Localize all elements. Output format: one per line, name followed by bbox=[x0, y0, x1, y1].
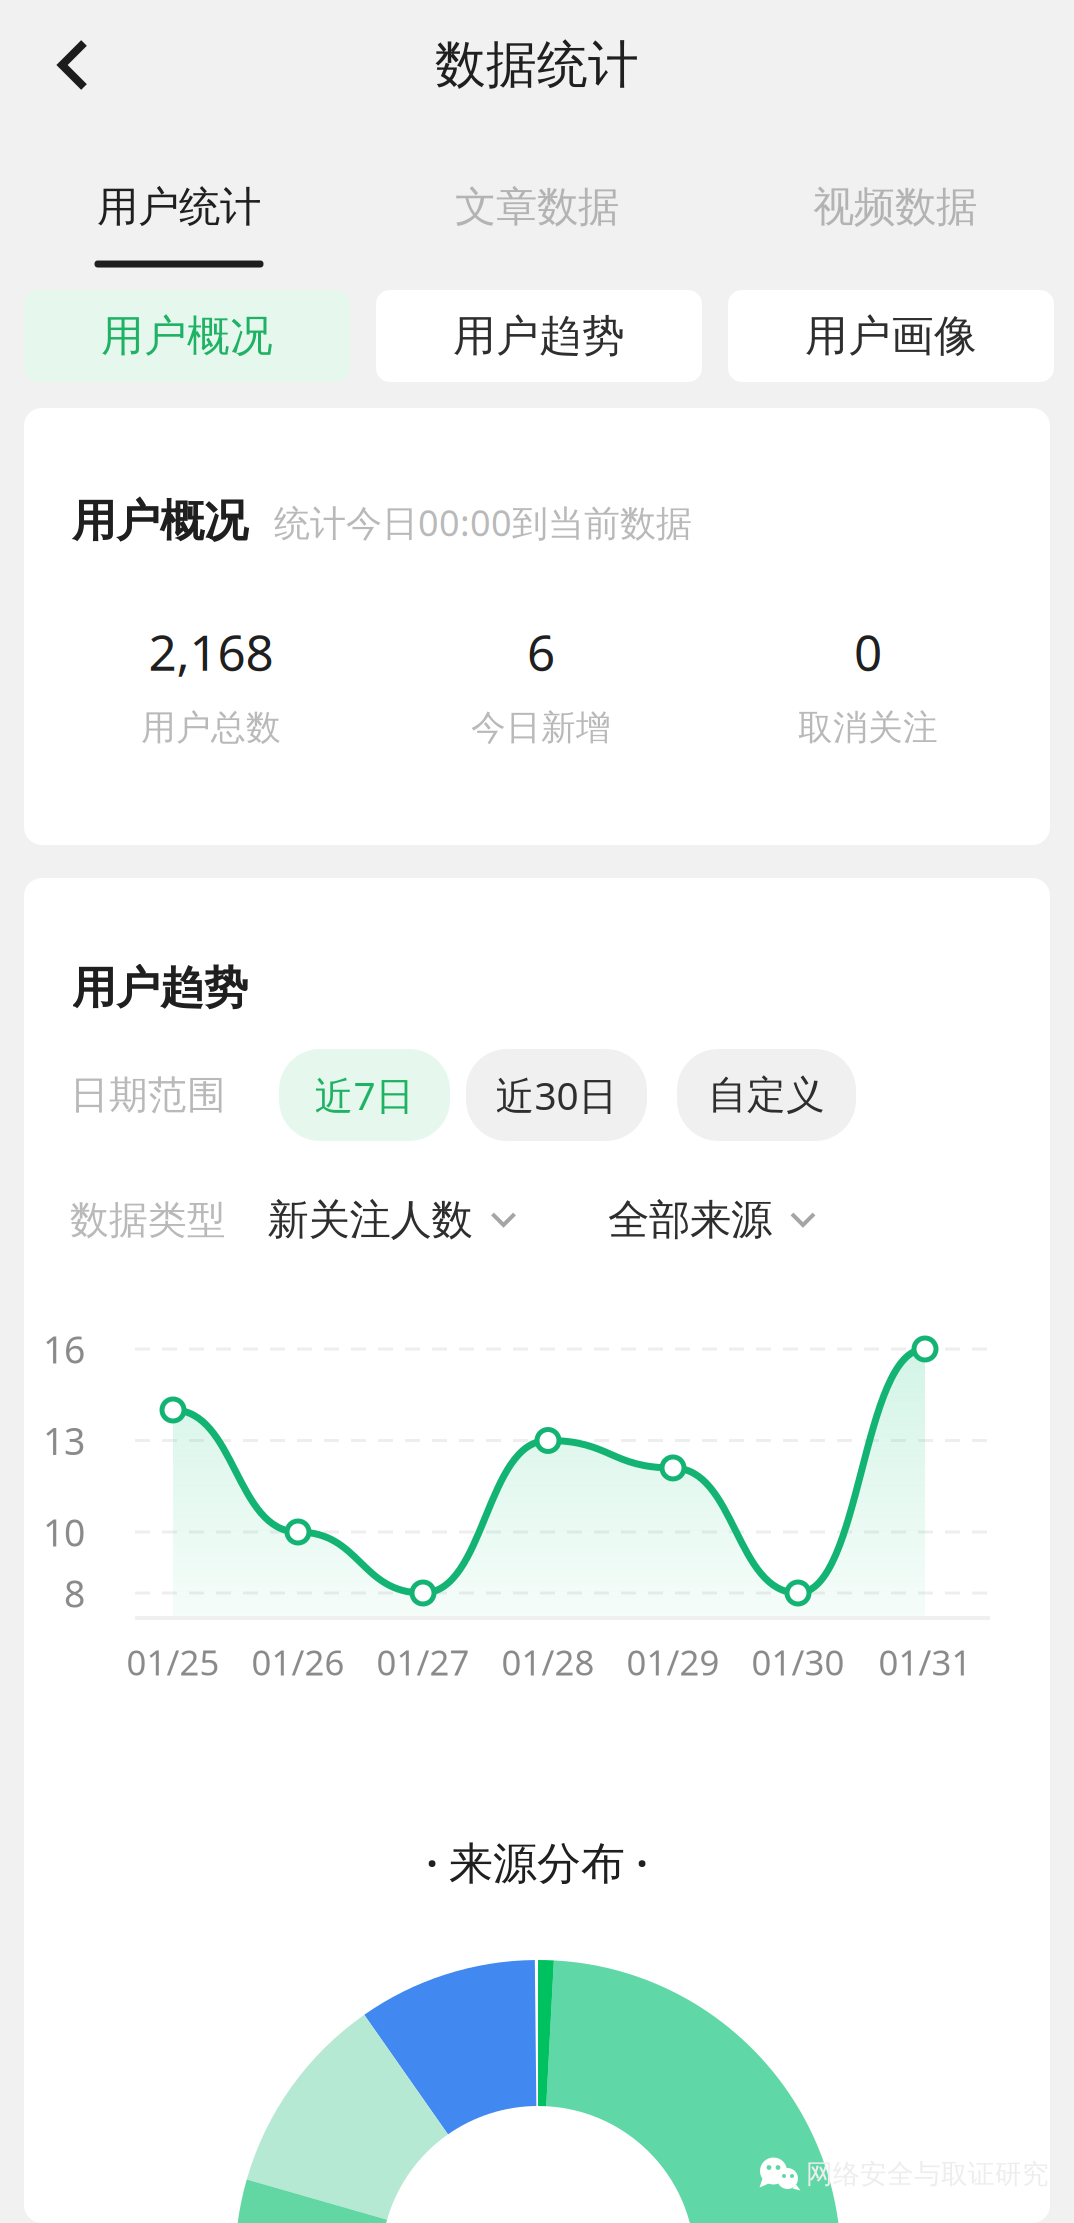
staticText: · 来源分布 · bbox=[426, 1833, 648, 1891]
button[interactable]: 文章数据 bbox=[358, 130, 716, 290]
button[interactable]: 全部来源 bbox=[24, 878, 1050, 2223]
staticText: 近7日 bbox=[314, 1069, 414, 1121]
button[interactable]: 视频数据 bbox=[716, 130, 1074, 290]
staticText: 全部来源 bbox=[608, 1195, 772, 1245]
staticText: 近30日 bbox=[495, 1069, 617, 1121]
staticText: 0 bbox=[854, 619, 882, 684]
staticText: 视频数据 bbox=[813, 182, 977, 232]
staticText: 10 bbox=[43, 1507, 85, 1557]
staticText: 取消关注 bbox=[798, 706, 938, 749]
staticText: 网络安全与取证研究 bbox=[806, 2158, 1049, 2190]
staticText: 01/31 bbox=[878, 1639, 971, 1685]
staticText: 自定义 bbox=[708, 1071, 825, 1119]
staticText: 01/26 bbox=[251, 1639, 344, 1685]
staticText: 数据统计 bbox=[435, 34, 639, 96]
staticText: 用户概况 bbox=[72, 494, 248, 548]
button[interactable]: 用户画像 bbox=[728, 290, 1054, 382]
staticText: 统计今日00:00到当前数据 bbox=[274, 498, 692, 546]
staticText: 01/25 bbox=[126, 1639, 219, 1685]
staticText: 2,168 bbox=[148, 619, 273, 684]
staticText: 01/27 bbox=[376, 1639, 469, 1685]
button[interactable]: 用户概况 bbox=[24, 290, 350, 382]
staticText: 16 bbox=[43, 1324, 85, 1374]
staticText: 用户画像 bbox=[805, 310, 977, 362]
staticText: 6 bbox=[527, 619, 555, 684]
staticText: 用户总数 bbox=[141, 706, 281, 749]
staticText: 01/29 bbox=[626, 1639, 719, 1685]
staticText: 8 bbox=[64, 1568, 85, 1618]
button[interactable]: 近30日 bbox=[24, 878, 1050, 2223]
staticText: 文章数据 bbox=[455, 182, 619, 232]
staticText: 用户趋势 bbox=[72, 961, 248, 1015]
button[interactable]: 近7日 bbox=[24, 878, 1050, 2223]
staticText: 日期范围 bbox=[70, 1071, 226, 1119]
button[interactable]: 新关注人数 bbox=[24, 878, 1050, 2223]
staticText: 新关注人数 bbox=[267, 1195, 472, 1245]
staticText: 01/30 bbox=[751, 1639, 844, 1685]
staticText: 今日新增 bbox=[471, 706, 611, 749]
button[interactable]: 返回 bbox=[0, 0, 132, 130]
staticText: 用户趋势 bbox=[453, 310, 625, 362]
button[interactable]: 用户统计 bbox=[0, 130, 358, 290]
staticText: 数据类型 bbox=[70, 1196, 226, 1244]
staticText: 01/28 bbox=[501, 1639, 594, 1685]
staticText: 用户统计 bbox=[97, 182, 261, 232]
button[interactable]: 用户趋势 bbox=[376, 290, 702, 382]
staticText: 用户概况 bbox=[101, 310, 273, 362]
staticText: 13 bbox=[43, 1416, 85, 1465]
button[interactable]: 自定义 bbox=[24, 878, 1050, 2223]
